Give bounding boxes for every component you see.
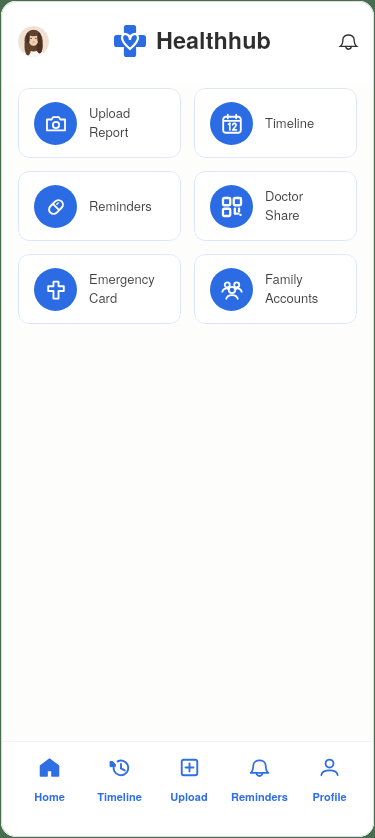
staticText: Share — [265, 205, 300, 224]
staticText: Emergency — [89, 269, 155, 288]
staticText: Report — [89, 122, 129, 141]
button[interactable]: Timeline — [84, 742, 154, 837]
staticText: Doctor — [265, 186, 304, 205]
staticText: Card — [89, 288, 118, 307]
staticText: Accounts — [265, 288, 319, 307]
button[interactable]: Reminders — [18, 171, 181, 241]
staticText: Healthhub — [156, 23, 271, 57]
button[interactable]: Family — [194, 254, 357, 324]
button[interactable]: Doctor — [194, 171, 357, 241]
button[interactable]: Reminders — [224, 742, 294, 837]
button[interactable]: Upload — [154, 742, 224, 837]
button[interactable]: Emergency — [18, 254, 181, 324]
staticText: Timeline — [265, 113, 315, 132]
button[interactable]: Notifications — [333, 26, 363, 56]
staticText: Reminders — [89, 196, 152, 215]
staticText: Upload — [89, 103, 131, 122]
staticText: Timeline — [97, 789, 142, 805]
staticText: Reminders — [231, 789, 288, 805]
staticText: Profile — [312, 789, 347, 805]
button[interactable]: Profile — [18, 26, 49, 57]
button[interactable]: Upload — [18, 88, 181, 158]
button[interactable]: Home — [14, 742, 84, 837]
button[interactable]: Timeline — [194, 88, 357, 158]
staticText: Family — [265, 269, 303, 288]
button[interactable]: Profile — [294, 742, 364, 837]
staticText: Upload — [170, 789, 208, 805]
staticText: Home — [34, 789, 65, 805]
